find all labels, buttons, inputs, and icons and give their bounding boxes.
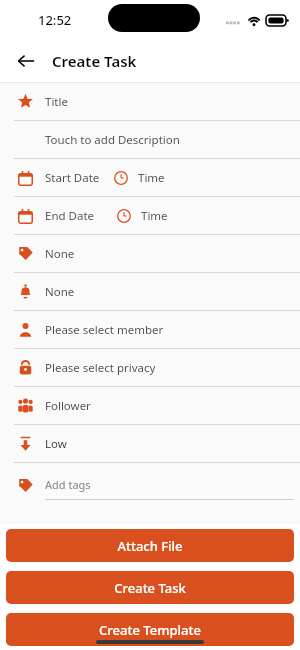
staticText: Attach File: [117, 537, 183, 555]
button[interactable]: Follower: [0, 387, 300, 424]
staticText: Title: [45, 94, 68, 110]
staticText: None: [45, 284, 75, 300]
staticText: Time: [138, 170, 165, 186]
button[interactable]: Time: [117, 208, 168, 224]
staticText: Touch to add Description: [45, 132, 180, 148]
staticText: End Date: [45, 208, 95, 224]
button[interactable]: None: [0, 273, 300, 310]
staticText: Please select member: [45, 322, 164, 338]
button[interactable]: Create Task: [6, 571, 294, 604]
staticText: 12:52: [38, 11, 72, 29]
staticText: Low: [45, 436, 67, 452]
staticText: None: [45, 246, 75, 262]
button[interactable]: Low: [0, 425, 300, 462]
button[interactable]: Attach File: [6, 529, 294, 562]
button[interactable]: Please select member: [0, 311, 300, 348]
staticText: Start Date: [45, 170, 100, 186]
button[interactable]: Add tags: [0, 463, 300, 507]
staticText: Create Task: [52, 51, 137, 71]
staticText: Add tags: [45, 477, 91, 492]
button[interactable]: Please select privacy: [0, 349, 300, 386]
button[interactable]: Title: [0, 83, 300, 120]
button[interactable]: Create Template: [6, 613, 294, 646]
staticText: Follower: [45, 398, 91, 414]
button[interactable]: End Date: [18, 208, 95, 224]
staticText: Please select privacy: [45, 360, 156, 376]
staticText: Create Task: [114, 579, 186, 597]
button[interactable]: Touch to add Description: [0, 121, 300, 158]
staticText: Time: [141, 208, 168, 224]
button[interactable]: Back: [8, 43, 44, 79]
staticText: Create Template: [99, 621, 201, 639]
button[interactable]: None: [0, 235, 300, 272]
button[interactable]: Time: [114, 170, 165, 186]
button[interactable]: Start Date: [18, 170, 100, 186]
